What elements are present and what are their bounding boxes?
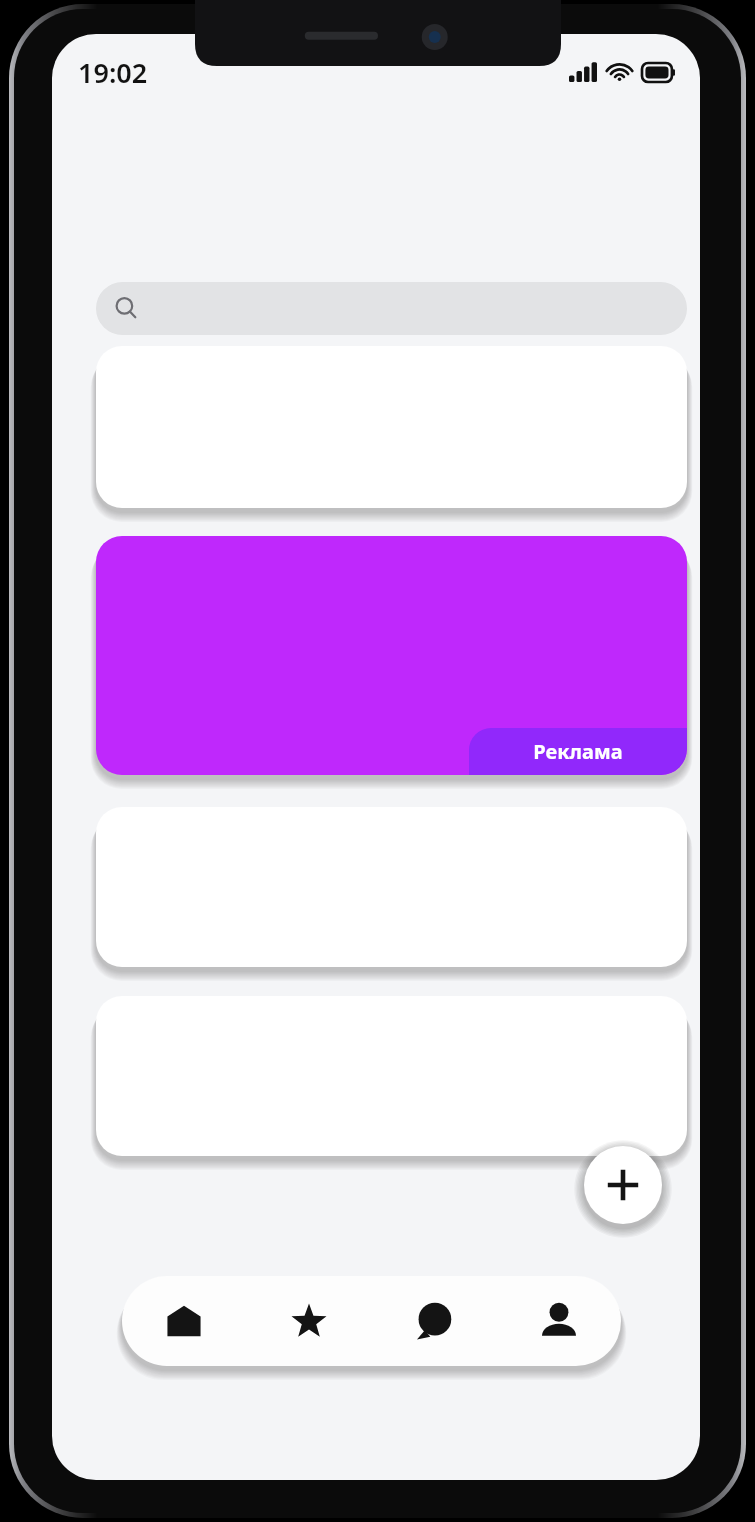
button[interactable] <box>96 996 687 1156</box>
button[interactable]: Profile <box>496 1276 621 1366</box>
button[interactable]: Favorites <box>246 1276 371 1366</box>
button[interactable]: Add <box>584 1146 662 1224</box>
button[interactable]: Search <box>96 282 687 335</box>
button[interactable]: Home <box>122 1276 246 1366</box>
staticText: Реклама <box>533 738 623 765</box>
button[interactable] <box>96 807 687 967</box>
button[interactable]: Messages <box>371 1276 496 1366</box>
other: Search <box>114 296 140 322</box>
staticText: 19:02 <box>78 54 148 91</box>
button[interactable]: Реклама <box>96 536 687 775</box>
button[interactable] <box>96 346 687 508</box>
